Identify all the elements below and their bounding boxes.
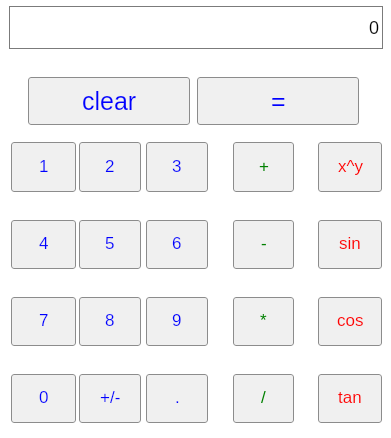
staticText: 0 bbox=[369, 18, 380, 38]
staticText: 1 bbox=[39, 157, 49, 176]
staticText: x^y bbox=[338, 157, 363, 176]
button[interactable]: +/- bbox=[79, 374, 141, 423]
staticText: tan bbox=[338, 388, 362, 407]
button[interactable]: sin bbox=[318, 220, 382, 269]
button[interactable]: cos bbox=[318, 297, 382, 346]
button[interactable]: 7 bbox=[11, 297, 76, 346]
button[interactable]: clear bbox=[28, 77, 190, 125]
button[interactable]: 6 bbox=[146, 220, 208, 269]
button[interactable]: 3 bbox=[146, 142, 208, 192]
button[interactable]: 8 bbox=[79, 297, 141, 346]
staticText: cos bbox=[337, 311, 364, 330]
staticText: 0 bbox=[39, 388, 49, 407]
staticText: clear bbox=[82, 87, 137, 115]
staticText: + bbox=[259, 157, 269, 176]
staticText: . bbox=[175, 388, 180, 407]
button[interactable]: 1 bbox=[11, 142, 76, 192]
staticText: +/- bbox=[100, 388, 121, 407]
button[interactable]: 0 bbox=[11, 374, 76, 423]
button[interactable]: - bbox=[233, 220, 294, 269]
staticText: 8 bbox=[105, 311, 115, 330]
button[interactable]: tan bbox=[318, 374, 382, 423]
button[interactable]: x^y bbox=[318, 142, 382, 192]
button[interactable]: 4 bbox=[11, 220, 76, 269]
button[interactable]: = bbox=[197, 77, 359, 125]
staticText: 5 bbox=[105, 234, 115, 253]
button[interactable]: * bbox=[233, 297, 294, 346]
staticText: 9 bbox=[172, 311, 182, 330]
button[interactable]: + bbox=[233, 142, 294, 192]
staticText: / bbox=[261, 388, 266, 407]
button[interactable]: . bbox=[146, 374, 208, 423]
staticText: 2 bbox=[105, 157, 115, 176]
staticText: * bbox=[260, 311, 267, 330]
staticText: 4 bbox=[39, 234, 49, 253]
staticText: - bbox=[261, 234, 267, 253]
staticText: 6 bbox=[172, 234, 182, 253]
staticText: sin bbox=[339, 234, 361, 253]
staticText: = bbox=[271, 87, 286, 115]
button[interactable]: / bbox=[233, 374, 294, 423]
staticText: 7 bbox=[39, 311, 49, 330]
button[interactable]: 5 bbox=[79, 220, 141, 269]
staticText: 3 bbox=[172, 157, 182, 176]
button[interactable]: 2 bbox=[79, 142, 141, 192]
button[interactable]: 9 bbox=[146, 297, 208, 346]
